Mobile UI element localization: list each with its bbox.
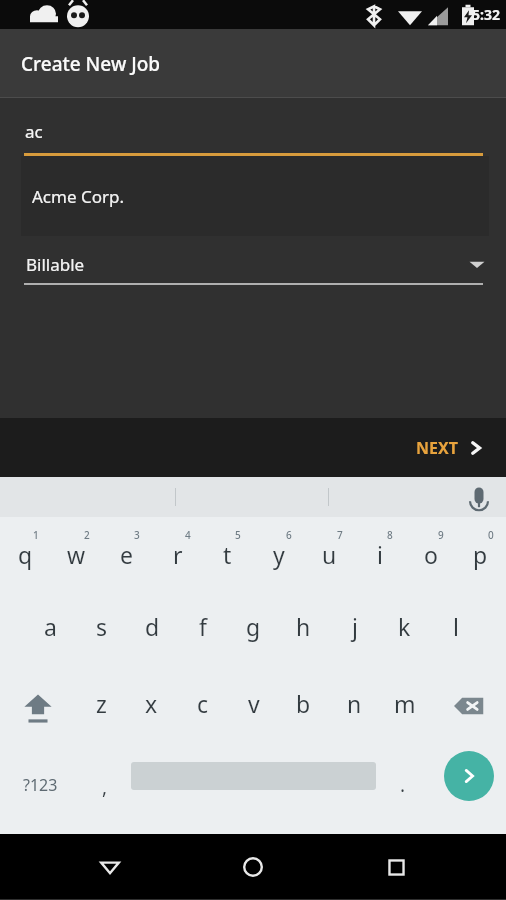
button[interactable]: b <box>278 667 329 744</box>
staticText: , <box>102 774 108 800</box>
button[interactable]: , <box>80 744 130 834</box>
button[interactable]: . <box>378 744 428 834</box>
staticText: q <box>18 539 33 570</box>
staticText: u <box>322 539 337 570</box>
staticText: a <box>44 611 57 642</box>
button[interactable]: 1 <box>0 517 51 590</box>
staticText: w <box>67 539 86 570</box>
button[interactable]: f <box>177 590 228 667</box>
button[interactable]: 5 <box>202 517 253 590</box>
button[interactable]: v <box>228 667 279 744</box>
button[interactable]: 3 <box>101 517 152 590</box>
staticText: n <box>347 688 362 719</box>
staticText: 8 <box>387 528 393 542</box>
staticText: 2 <box>84 528 90 542</box>
staticText: p <box>473 539 488 570</box>
staticText: ?123 <box>23 774 58 796</box>
button[interactable]: ?123 <box>0 744 80 834</box>
staticText: y <box>273 539 285 570</box>
button[interactable]: k <box>379 590 430 667</box>
button[interactable]: Acme Corp. <box>21 156 489 236</box>
staticText: b <box>296 688 311 719</box>
staticText: 0 <box>488 528 494 542</box>
button[interactable]: n <box>329 667 380 744</box>
staticText: c <box>197 688 209 719</box>
staticText: z <box>96 688 107 719</box>
staticText: k <box>398 611 411 642</box>
staticText: 5:32 <box>472 5 500 24</box>
staticText: f <box>199 611 207 642</box>
button[interactable]: d <box>127 590 178 667</box>
button[interactable]: 8 <box>354 517 405 590</box>
staticText: 4 <box>185 528 191 542</box>
button[interactable]: 7 <box>304 517 355 590</box>
button[interactable]: l <box>430 590 481 667</box>
staticText: Billable <box>26 253 85 276</box>
staticText: l <box>453 611 459 642</box>
button[interactable]: h <box>278 590 329 667</box>
staticText: 3 <box>134 528 140 542</box>
staticText: h <box>296 611 311 642</box>
button[interactable]: c <box>177 667 228 744</box>
button[interactable]: Back <box>86 843 134 891</box>
button[interactable]: s <box>76 590 127 667</box>
button[interactable]: Enter <box>444 751 494 801</box>
button[interactable]: a <box>25 590 76 667</box>
button[interactable]: Recent apps <box>372 843 420 891</box>
button[interactable]: z <box>76 667 127 744</box>
staticText: i <box>377 539 383 570</box>
staticText: r <box>173 539 183 570</box>
button[interactable]: Billable <box>0 240 506 288</box>
button[interactable]: 2 <box>51 517 102 590</box>
button[interactable]: Voice input <box>462 480 496 514</box>
staticText: Create New Job <box>21 51 161 77</box>
staticText: 7 <box>337 528 343 542</box>
button[interactable]: Backspace <box>431 667 506 744</box>
button[interactable]: 4 <box>152 517 203 590</box>
button[interactable]: g <box>228 590 279 667</box>
button[interactable]: x <box>126 667 177 744</box>
button[interactable]: 9 <box>405 517 456 590</box>
button[interactable]: 0 <box>455 517 506 590</box>
staticText: o <box>424 539 438 570</box>
button[interactable]: m <box>379 667 430 744</box>
staticText: j <box>352 611 358 642</box>
staticText: NEXT <box>416 437 458 459</box>
staticText: . <box>400 772 406 798</box>
staticText: ac <box>25 120 43 143</box>
staticText: 6 <box>286 528 292 542</box>
staticText: 5 <box>235 528 241 542</box>
button[interactable]: Shift <box>0 667 75 744</box>
staticText: s <box>96 611 108 642</box>
staticText: t <box>223 539 232 570</box>
staticText: 9 <box>438 528 444 542</box>
staticText: g <box>246 611 261 642</box>
button[interactable]: NEXT <box>408 431 492 465</box>
staticText: d <box>145 611 160 642</box>
staticText: v <box>248 688 260 719</box>
button[interactable]: Home <box>229 843 277 891</box>
button[interactable]: j <box>329 590 380 667</box>
staticText: 1 <box>33 528 39 542</box>
staticText: m <box>394 688 416 719</box>
button[interactable]: 6 <box>253 517 304 590</box>
staticText: e <box>120 539 133 570</box>
staticText: x <box>145 688 158 719</box>
staticText: Acme Corp. <box>32 185 124 208</box>
